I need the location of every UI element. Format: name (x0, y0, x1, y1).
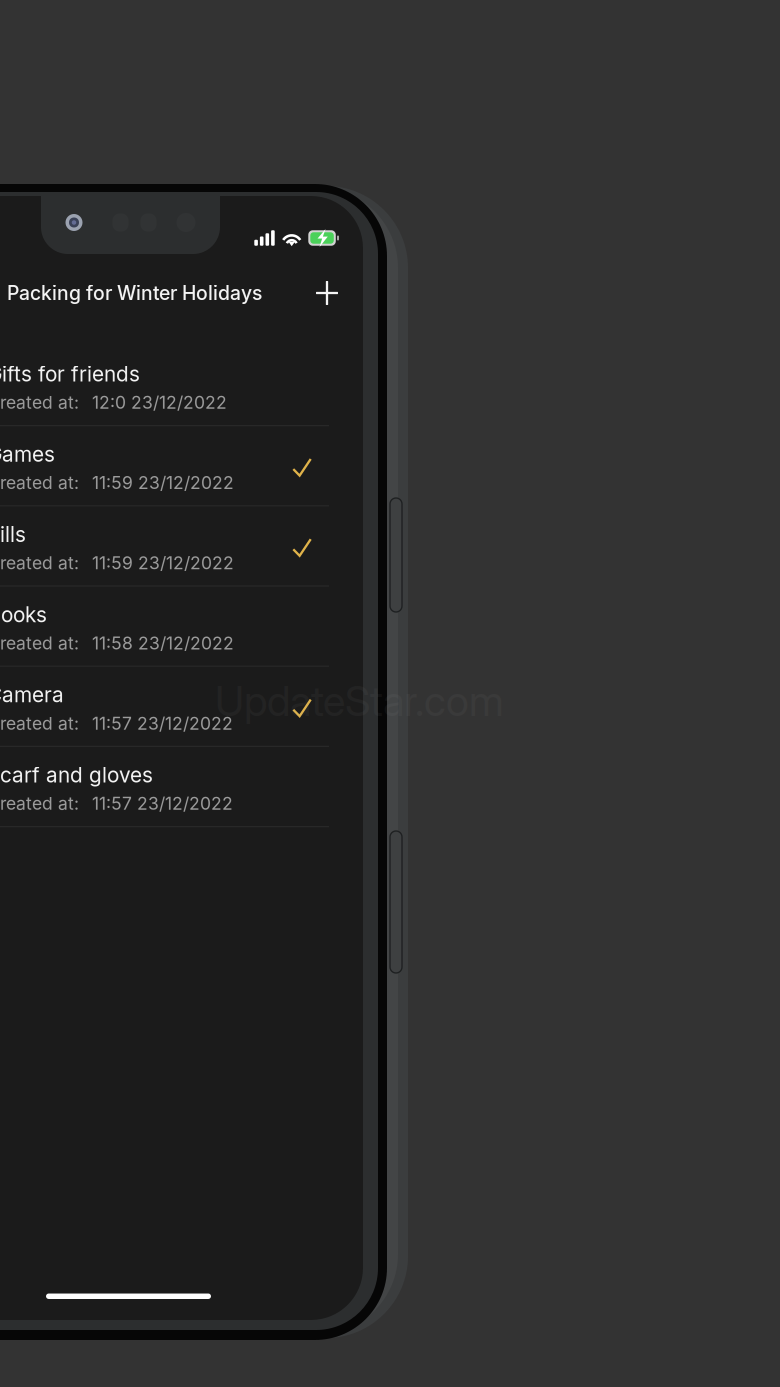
staticText: Scarf and gloves (0, 762, 153, 788)
staticText: Books (0, 602, 47, 627)
button[interactable]: Add item (312, 278, 342, 308)
button[interactable]: Gifts for friends (0, 346, 363, 425)
staticText: Created at: (0, 632, 79, 654)
staticText: Created at: (0, 472, 79, 493)
staticText: Games (0, 442, 55, 467)
staticText: Packing for Winter Holidays (7, 281, 262, 305)
button[interactable]: Pills (0, 506, 363, 585)
staticText: 12:0 23/12/2022 (92, 392, 227, 413)
staticText: Pills (0, 522, 26, 547)
staticText: Created at: (0, 793, 79, 814)
staticText: 11:57 23/12/2022 (92, 793, 233, 814)
button[interactable]: Games (0, 426, 363, 505)
button[interactable]: Camera (0, 667, 363, 746)
staticText: 11:57 23/12/2022 (92, 713, 233, 734)
staticText: Created at: (0, 713, 79, 734)
button[interactable]: Scarf and gloves (0, 747, 363, 826)
button[interactable]: Books (0, 587, 363, 666)
staticText: UpdateStar.com (215, 676, 504, 726)
staticText: 11:59 23/12/2022 (92, 552, 234, 573)
staticText: Camera (0, 682, 64, 707)
staticText: 11:58 23/12/2022 (92, 632, 234, 654)
staticText: Gifts for friends (0, 361, 140, 387)
staticText: Created at: (0, 552, 79, 573)
staticText: Created at: (0, 392, 79, 413)
staticText: 11:59 23/12/2022 (92, 472, 234, 493)
